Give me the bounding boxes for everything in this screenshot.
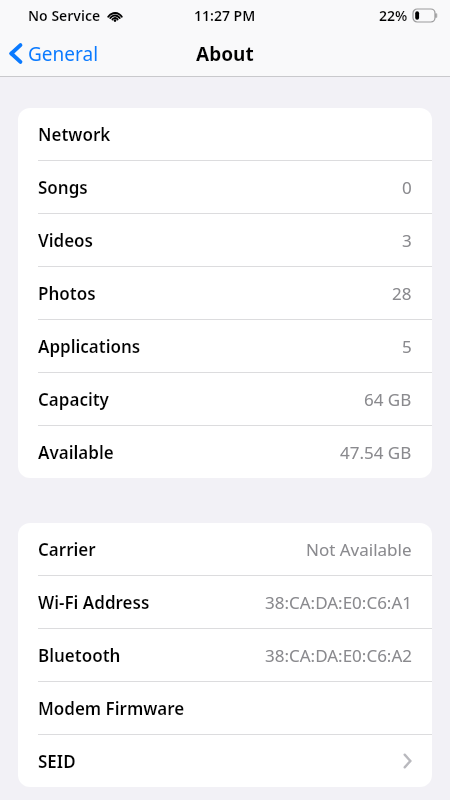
- staticText: Capacity: [38, 388, 109, 411]
- staticText: Network: [38, 123, 111, 146]
- staticText: 28: [392, 282, 412, 305]
- staticText: Wi-Fi Address: [38, 591, 150, 614]
- staticText: Carrier: [38, 538, 96, 561]
- button[interactable]: Capacity: [18, 373, 432, 425]
- staticText: 5: [402, 335, 412, 358]
- button[interactable]: Carrier: [18, 523, 432, 575]
- staticText: No Service: [28, 6, 101, 25]
- staticText: Videos: [38, 229, 93, 252]
- staticText: 47.54 GB: [340, 441, 412, 464]
- staticText: 11:27 PM: [194, 6, 256, 25]
- staticText: Photos: [38, 282, 96, 305]
- button[interactable]: Photos: [18, 267, 432, 319]
- button[interactable]: General: [0, 30, 109, 77]
- button[interactable]: Applications: [18, 320, 432, 372]
- staticText: About: [196, 41, 254, 67]
- button[interactable]: Bluetooth: [18, 629, 432, 681]
- button[interactable]: Available: [18, 426, 432, 478]
- staticText: 38:CA:DA:E0:C6:A1: [265, 591, 412, 614]
- button[interactable]: Songs: [18, 161, 432, 213]
- button[interactable]: SEID: [18, 735, 432, 787]
- staticText: 64 GB: [364, 388, 412, 411]
- staticText: 0: [402, 176, 412, 199]
- staticText: Available: [38, 441, 114, 464]
- staticText: General: [28, 41, 99, 67]
- staticText: 3: [402, 229, 412, 252]
- staticText: Songs: [38, 176, 88, 199]
- staticText: SEID: [38, 750, 76, 773]
- button[interactable]: Wi-Fi Address: [18, 576, 432, 628]
- staticText: 22%: [379, 6, 408, 25]
- staticText: Bluetooth: [38, 644, 121, 667]
- staticText: Not Available: [306, 538, 412, 561]
- staticText: Modem Firmware: [38, 697, 185, 720]
- button[interactable]: Videos: [18, 214, 432, 266]
- staticText: 38:CA:DA:E0:C6:A2: [265, 644, 412, 667]
- staticText: Applications: [38, 335, 141, 358]
- button[interactable]: Network: [18, 108, 432, 160]
- button[interactable]: Modem Firmware: [18, 682, 432, 734]
